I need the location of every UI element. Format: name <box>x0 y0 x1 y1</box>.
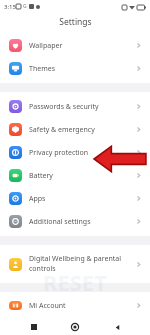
staticText: Settings <box>59 16 92 28</box>
button[interactable]: Additional settings <box>0 210 150 233</box>
staticText: RESET <box>43 267 107 297</box>
staticText: G <box>23 3 27 10</box>
button[interactable]: Themes <box>0 57 150 80</box>
button[interactable]: Passwords & security <box>0 95 150 118</box>
staticText: 3:15 <box>4 3 16 11</box>
staticText: controls <box>29 264 56 274</box>
staticText: Additional settings <box>29 217 91 227</box>
staticText: Passwords & security <box>29 102 99 112</box>
staticText: Digital Wellbeing & parental <box>29 254 122 264</box>
staticText: Wallpaper <box>29 41 63 51</box>
button[interactable]: Wallpaper <box>0 34 150 57</box>
button[interactable]: Mi Account <box>0 296 150 315</box>
button[interactable]: Digital Wellbeing & parental <box>0 249 150 279</box>
button[interactable]: Privacy protection <box>0 141 150 164</box>
button[interactable]: Battery <box>0 164 150 187</box>
button[interactable]: Recents <box>26 319 42 335</box>
staticText: Apps <box>29 194 46 204</box>
staticText: Privacy protection <box>29 148 89 158</box>
button[interactable]: Apps <box>0 187 150 210</box>
staticText: Battery <box>29 171 53 181</box>
button[interactable]: Home <box>67 319 83 335</box>
staticText: Safety & emergency <box>29 125 95 135</box>
staticText: Themes <box>29 64 56 74</box>
button[interactable]: Safety & emergency <box>0 118 150 141</box>
button[interactable]: Back <box>109 319 125 335</box>
staticText: Mi Account <box>29 301 66 310</box>
